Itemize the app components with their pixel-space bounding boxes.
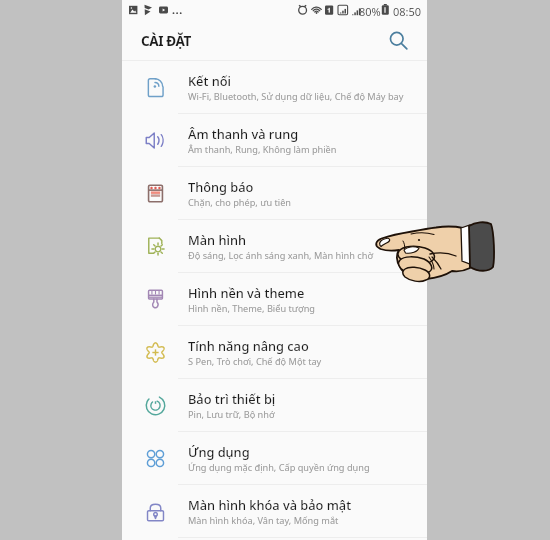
button[interactable]: Màn hình khóa và bảo mật [122,485,427,537]
staticText: Chặn, cho phép, ưu tiên [188,196,292,209]
staticText: Âm thanh, Rung, Không làm phiền [188,143,337,156]
staticText: Bảo trì thiết bị [188,390,276,407]
staticText: CÀI ĐẶT [141,32,191,50]
button[interactable]: Search [385,27,413,55]
staticText: Kết nối [188,72,231,89]
staticText: Màn hình khóa, Vân tay, Mống mắt [188,514,339,527]
button[interactable]: Hình nền và theme [122,273,427,325]
staticText: Màn hình khóa và bảo mật [188,496,352,513]
button[interactable]: Kết nối [122,61,427,113]
button[interactable]: Ứng dụng [122,432,427,484]
button[interactable]: Tính năng nâng cao [122,326,427,378]
staticText: Ứng dụng [188,443,250,460]
staticText: Hình nền, Theme, Biểu tượng [188,302,315,315]
staticText: Pin, Lưu trữ, Bộ nhớ [188,408,275,421]
button[interactable]: Bảo trì thiết bị [122,379,427,431]
staticText: Wi-Fi, Bluetooth, Sử dụng dữ liệu, Chế đ… [188,90,404,103]
staticText: Thông báo [188,178,254,195]
staticText: Màn hình [188,231,246,248]
staticText: Độ sáng, Lọc ánh sáng xanh, Màn hình chờ [188,249,374,262]
staticText: 08:50 [393,4,422,19]
staticText: Tính năng nâng cao [188,337,309,354]
staticText: 80% [359,4,381,19]
button[interactable]: Màn hình [122,220,427,272]
staticText: Hình nền và theme [188,284,305,301]
staticText: Âm thanh và rung [188,125,299,142]
staticText: S Pen, Trò chơi, Chế độ Một tay [188,355,322,368]
button[interactable]: Âm thanh và rung [122,114,427,166]
button[interactable]: Thông báo [122,167,427,219]
staticText: Ứng dụng mặc định, Cấp quyền ứng dụng [188,461,370,474]
